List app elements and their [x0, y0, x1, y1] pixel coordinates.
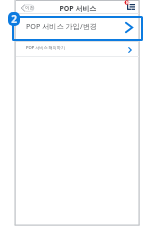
staticText: POP 서비스 가입/변경: [26, 21, 98, 31]
button[interactable]: 이전: [20, 4, 35, 12]
button[interactable]: 전체 메뉴: [124, 0, 136, 11]
staticText: 이전: [25, 5, 34, 11]
staticText: POP 서비스: [1, 4, 154, 14]
staticText: N: [126, 0, 129, 5]
staticText: 2: [11, 12, 17, 26]
button[interactable]: POP 서비스 해지하기: [16, 42, 139, 55]
button[interactable]: POP 서비스 가입/변경: [16, 16, 139, 41]
staticText: POP 서비스 해지하기: [26, 45, 65, 51]
